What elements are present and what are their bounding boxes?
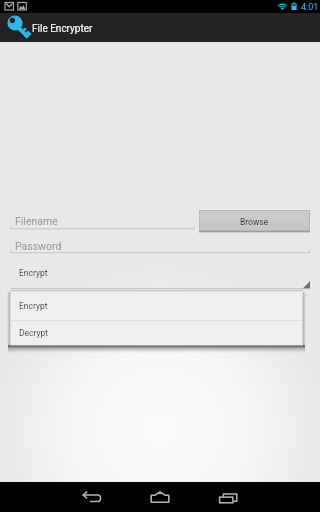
staticText: Encrypt bbox=[19, 301, 48, 311]
staticText: File Encrypter bbox=[32, 23, 93, 35]
button[interactable]: Recent apps bbox=[205, 482, 253, 512]
button[interactable]: Encrypt bbox=[10, 290, 303, 319]
button[interactable]: Encrypt bbox=[10, 255, 310, 289]
staticText: Password bbox=[15, 240, 62, 252]
button[interactable]: Browse bbox=[199, 210, 310, 233]
staticText: Filename bbox=[15, 215, 58, 227]
button[interactable]: Back bbox=[68, 482, 116, 512]
staticText: 4:01 bbox=[301, 2, 319, 13]
button[interactable]: Decrypt bbox=[10, 320, 303, 346]
staticText: Decrypt bbox=[19, 328, 49, 338]
staticText: Browse bbox=[240, 217, 269, 227]
button[interactable]: Password bbox=[10, 232, 310, 255]
staticText: Encrypt bbox=[19, 268, 48, 278]
button[interactable]: Home bbox=[136, 482, 184, 512]
button[interactable]: Filename bbox=[10, 208, 195, 231]
